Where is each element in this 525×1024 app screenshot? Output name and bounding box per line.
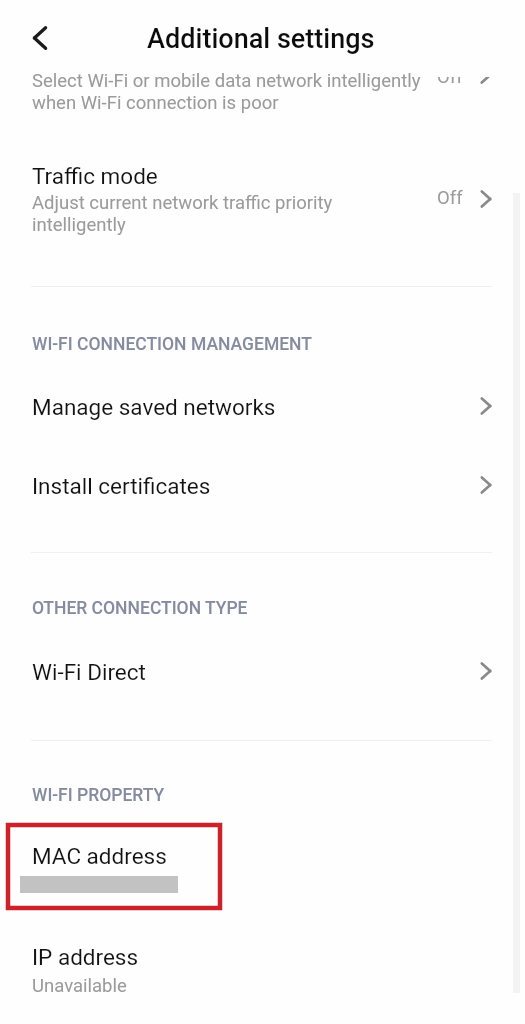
button[interactable]: Select Wi-Fi or mobile data network inte…	[0, 72, 525, 116]
staticText: WI-FI CONNECTION MANAGEMENT	[32, 334, 312, 355]
button[interactable]: Install certificates	[0, 459, 525, 515]
staticText: IP address	[32, 944, 139, 970]
button[interactable]: Traffic mode	[0, 157, 525, 253]
staticText: Off	[437, 77, 463, 88]
staticText: OTHER CONNECTION TYPE	[32, 598, 248, 619]
staticText: Install certificates	[32, 473, 211, 499]
staticText: Additional settings	[147, 23, 375, 55]
button[interactable]: MAC address	[0, 833, 525, 905]
staticText: Adjust current network traffic priority …	[32, 192, 333, 235]
staticText: MAC address	[32, 843, 167, 869]
staticText: Off	[437, 187, 463, 209]
button[interactable]: IP address	[0, 935, 525, 1007]
button[interactable]: Manage saved networks	[0, 380, 525, 436]
staticText: Manage saved networks	[32, 394, 276, 420]
staticText: Unavailable	[32, 975, 127, 997]
button[interactable]: Wi-Fi Direct	[0, 645, 525, 701]
staticText: Wi-Fi Direct	[32, 659, 146, 685]
button[interactable]: Back	[18, 16, 62, 60]
staticText: Select Wi-Fi or mobile data network inte…	[32, 72, 421, 113]
staticText: Traffic mode	[32, 163, 158, 189]
staticText: WI-FI PROPERTY	[32, 785, 165, 806]
